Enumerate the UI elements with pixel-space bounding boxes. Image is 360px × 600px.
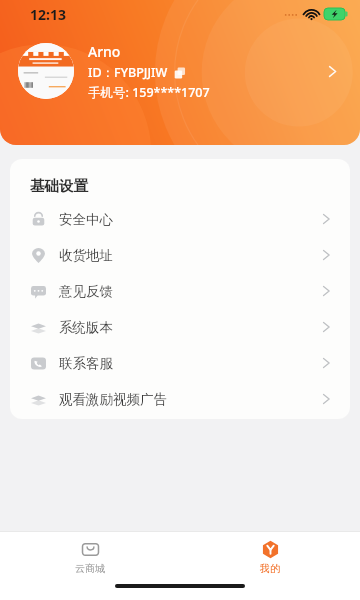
staticText: 系统版本 (59, 319, 113, 336)
button[interactable]: 观看激励视频广告 (10, 381, 350, 417)
button[interactable]: 联系客服 (10, 345, 350, 381)
staticText: 手机号: 159****1707 (88, 84, 210, 101)
staticText: 我的 (260, 562, 280, 575)
staticText: 云商城 (75, 562, 105, 575)
button[interactable]: Avatar (18, 43, 74, 99)
button[interactable]: 系统版本 (10, 309, 350, 345)
button[interactable]: 我的 (180, 532, 360, 582)
button[interactable]: Profile details (318, 57, 346, 85)
staticText: 观看激励视频广告 (59, 391, 167, 408)
staticText: 联系客服 (59, 355, 113, 372)
staticText: 收货地址 (59, 247, 113, 264)
staticText: ID：FYBPJJIW (88, 64, 168, 81)
button[interactable]: Copy ID (173, 66, 187, 80)
staticText: 安全中心 (59, 211, 113, 228)
staticText: 意见反馈 (59, 283, 113, 300)
staticText: 12:13 (30, 5, 66, 24)
button[interactable]: Avatar (0, 36, 360, 106)
staticText: 基础设置 (30, 177, 88, 195)
button[interactable]: 安全中心 (10, 201, 350, 237)
staticText: Arno (88, 42, 121, 61)
button[interactable]: 收货地址 (10, 237, 350, 273)
button[interactable]: 意见反馈 (10, 273, 350, 309)
button[interactable]: 云商城 (0, 532, 180, 582)
